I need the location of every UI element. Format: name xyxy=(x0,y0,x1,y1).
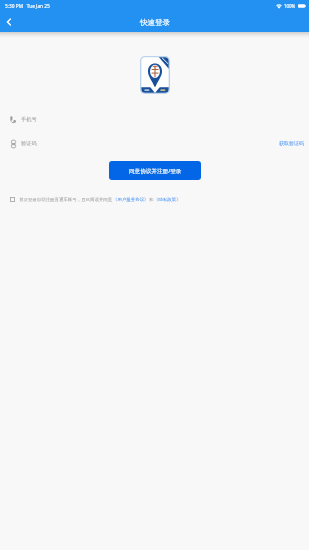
staticText: 《用户服务协议》 xyxy=(113,197,149,203)
staticText: 首次登录自动注册直通车账号，且已阅读并同意 xyxy=(19,197,113,203)
button[interactable]: Back xyxy=(0,13,18,31)
staticText: 手机号 xyxy=(21,116,37,123)
button[interactable]: 手机号 xyxy=(0,108,309,130)
button[interactable]: 《用户服务协议》 xyxy=(113,197,149,203)
staticText: 验证码 xyxy=(21,140,37,147)
staticText: 快速登录 xyxy=(140,18,170,27)
staticText: 《隐私政策》 xyxy=(154,197,181,203)
button[interactable]: 《隐私政策》 xyxy=(154,197,181,203)
button[interactable]: 同意协议并注册/登录 xyxy=(109,161,201,180)
button[interactable]: 验证码 xyxy=(21,140,37,147)
staticText: 同意协议并注册/登录 xyxy=(129,167,182,175)
staticText: 获取验证码 xyxy=(279,140,304,146)
button[interactable]: 获取验证码 xyxy=(273,135,309,151)
staticText: 和 xyxy=(149,197,154,203)
staticText: 100% xyxy=(284,3,296,9)
button[interactable]: Agree to terms checkbox xyxy=(10,197,15,202)
staticText: 5:30 PM Tue Jan 25 xyxy=(5,3,50,10)
